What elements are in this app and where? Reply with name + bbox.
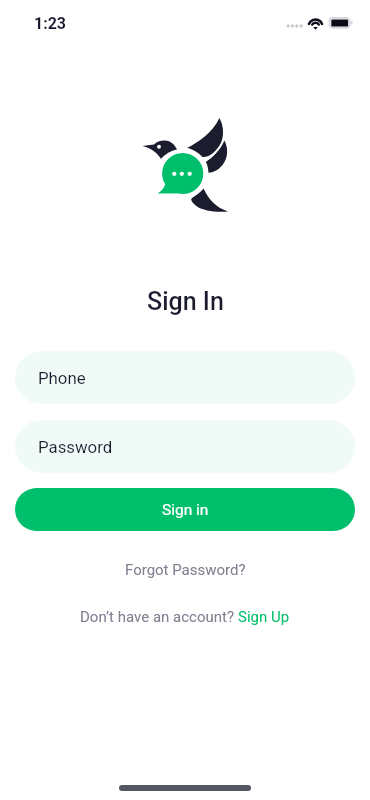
staticText: Sign In bbox=[147, 287, 224, 316]
staticText: Sign in bbox=[162, 501, 209, 519]
button[interactable]: Password bbox=[15, 420, 355, 473]
staticText: Sign Up bbox=[238, 608, 290, 626]
button[interactable]: Sign in bbox=[15, 488, 355, 531]
other: App logo bbox=[140, 114, 232, 216]
button[interactable]: Sign Up bbox=[238, 608, 290, 626]
staticText: Password bbox=[38, 437, 113, 457]
staticText: 1:23 bbox=[34, 14, 67, 33]
button[interactable]: Phone bbox=[15, 351, 355, 404]
staticText: Don’t have an account? bbox=[80, 608, 238, 626]
staticText: Phone bbox=[38, 368, 86, 388]
button[interactable]: Forgot Password? bbox=[117, 558, 254, 582]
staticText: Forgot Password? bbox=[125, 561, 246, 579]
